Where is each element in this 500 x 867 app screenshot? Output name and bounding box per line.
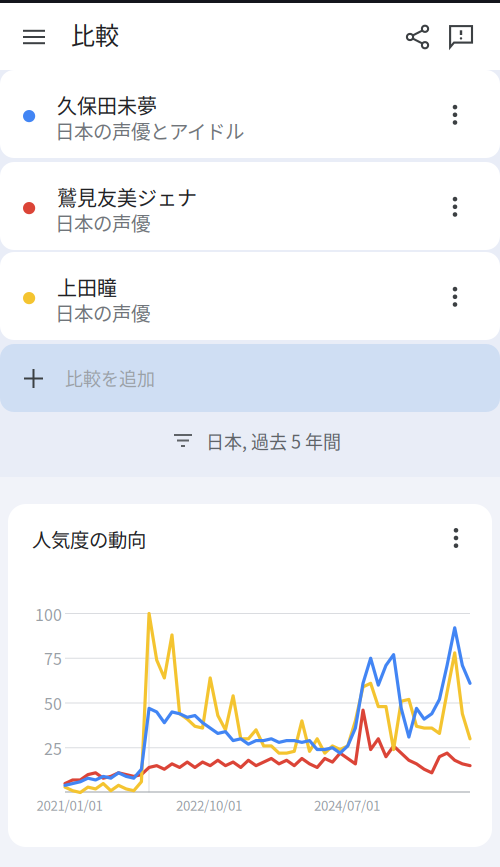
button[interactable]: Share <box>395 14 441 60</box>
staticText: 日本の声優 <box>55 208 150 237</box>
staticText: 上田瞳 <box>57 272 117 301</box>
staticText: 鷲見友美ジェナ <box>57 182 197 211</box>
button[interactable]: More options <box>441 523 471 553</box>
staticText: 比較を追加 <box>65 365 155 391</box>
staticText: 人気度の動向 <box>32 525 146 553</box>
staticText: 50 <box>44 691 62 715</box>
staticText: 25 <box>44 736 62 760</box>
button[interactable]: Menu <box>11 14 57 60</box>
button[interactable]: 比較を追加 <box>0 344 500 412</box>
button[interactable]: 鷲見友美ジェナ <box>0 162 500 250</box>
staticText: 比較 <box>71 17 119 51</box>
staticText: 2021/01/01 <box>36 795 102 815</box>
staticText: 日本の声優 <box>55 298 150 327</box>
staticText: 日本, 過去 5 年間 <box>206 428 341 454</box>
staticText: 2024/07/01 <box>314 795 380 815</box>
button[interactable]: 日本, 過去 5 年間 <box>170 419 390 463</box>
button[interactable]: 上田瞳 <box>0 252 500 340</box>
staticText: 2022/10/01 <box>176 795 242 815</box>
staticText: 久保田未夢 <box>57 90 157 119</box>
staticText: 日本の声優とアイドル <box>55 116 244 145</box>
button[interactable]: 久保田未夢 <box>0 70 500 158</box>
button[interactable]: Send feedback <box>438 14 484 60</box>
staticText: 75 <box>44 646 62 670</box>
staticText: 100 <box>35 602 62 626</box>
